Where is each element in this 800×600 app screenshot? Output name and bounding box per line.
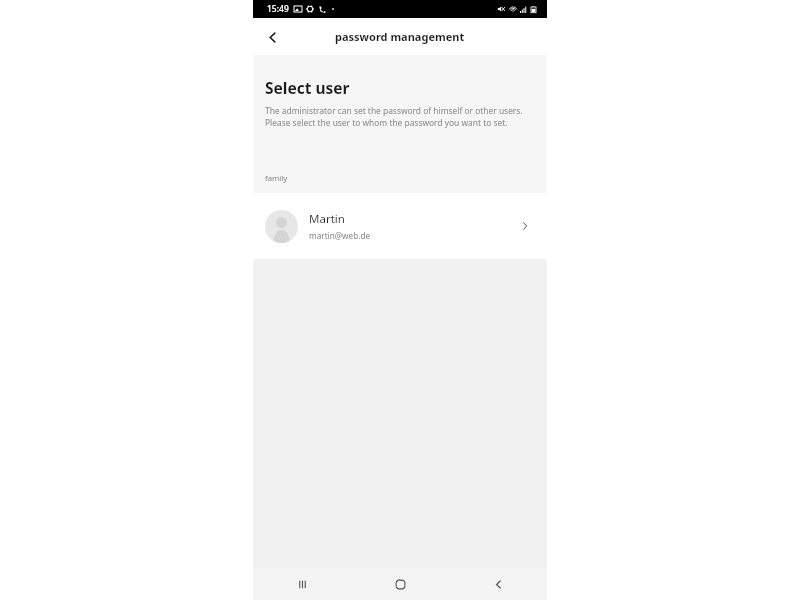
- staticText: Martin: [309, 211, 345, 227]
- button[interactable]: Recents: [253, 568, 351, 600]
- button[interactable]: Back: [257, 22, 287, 52]
- staticText: 15:49: [267, 3, 289, 15]
- staticText: family: [265, 173, 288, 184]
- staticText: The administrator can set the password o…: [265, 105, 537, 129]
- other: Open Martin: [515, 216, 535, 236]
- staticText: Select user: [265, 77, 350, 98]
- staticText: martin@web.de: [309, 230, 371, 241]
- button[interactable]: Home: [351, 568, 449, 600]
- button[interactable]: Back: [449, 568, 547, 600]
- staticText: password management: [335, 29, 465, 44]
- button[interactable]: Martin: [253, 193, 547, 259]
